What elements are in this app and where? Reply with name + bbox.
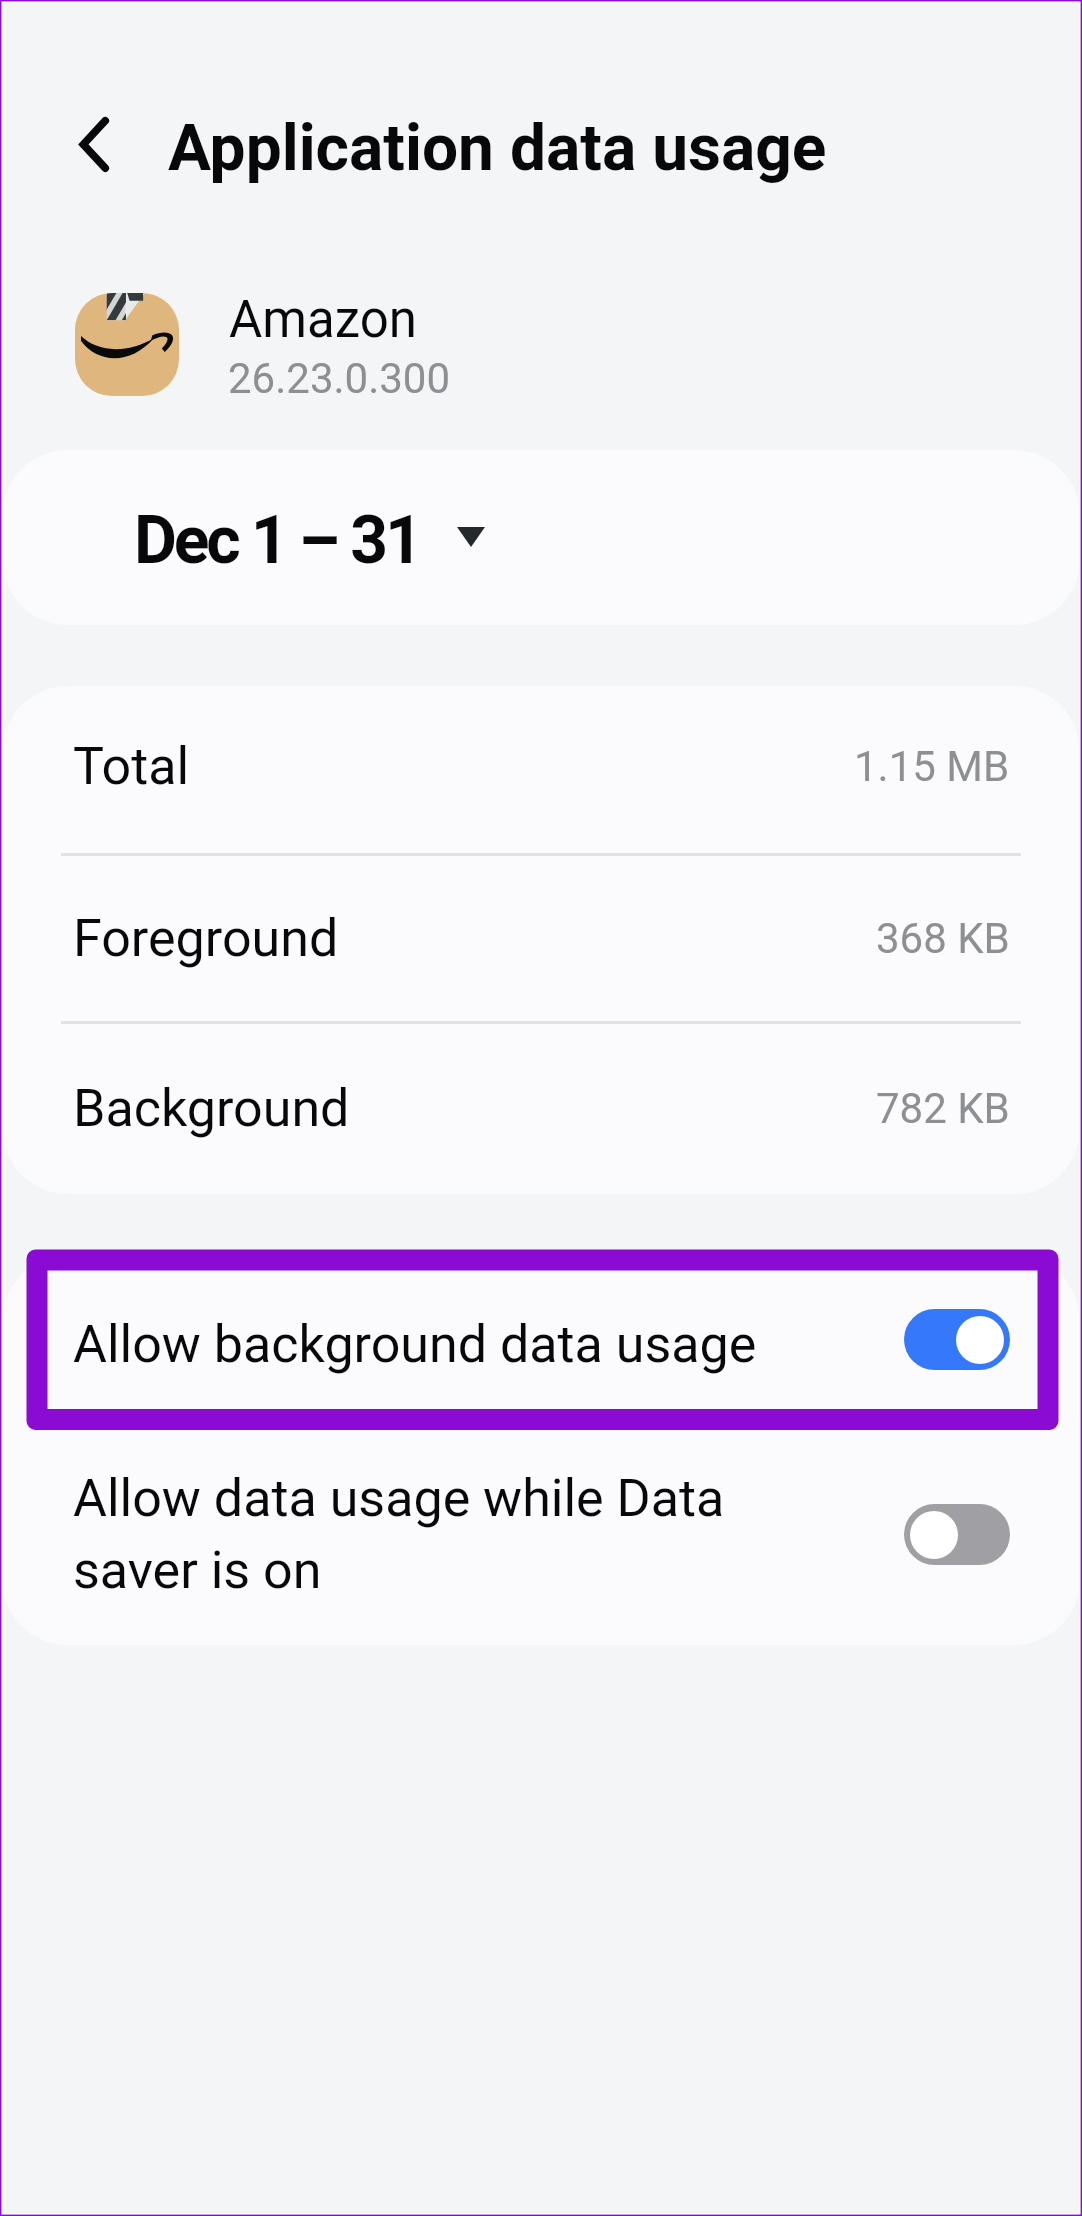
button[interactable]: Allow data usage while Data saver is on bbox=[2, 1424, 1080, 1645]
staticText: 782 KB bbox=[876, 1084, 1010, 1133]
staticText: Application data usage bbox=[168, 111, 827, 186]
button[interactable]: Navigate up bbox=[44, 107, 118, 181]
staticText: Background bbox=[73, 1078, 350, 1139]
staticText: Foreground bbox=[73, 908, 339, 969]
staticText: Allow data usage while Data saver is on bbox=[73, 1468, 725, 1601]
staticText: Total bbox=[73, 736, 190, 797]
button[interactable]: Foreground bbox=[2, 855, 1080, 1023]
staticText: Amazon bbox=[229, 290, 417, 350]
staticText: Allow background data usage bbox=[73, 1314, 757, 1375]
staticText: 368 KB bbox=[876, 914, 1010, 963]
button[interactable]: Allow background data usage bbox=[2, 1255, 1080, 1424]
button[interactable]: Total bbox=[2, 686, 1080, 855]
button[interactable]: Background bbox=[2, 1023, 1080, 1194]
button[interactable]: Switch off bbox=[904, 1504, 1010, 1565]
staticText: 26.23.0.300 bbox=[228, 354, 451, 403]
button[interactable]: Dec 1 – 31 bbox=[2, 450, 1080, 625]
button[interactable]: Amazon app icon bbox=[75, 293, 179, 396]
staticText: Dec 1 – 31 bbox=[134, 502, 420, 579]
button[interactable]: Switch on bbox=[904, 1309, 1010, 1370]
staticText: 1.15 MB bbox=[854, 742, 1010, 791]
